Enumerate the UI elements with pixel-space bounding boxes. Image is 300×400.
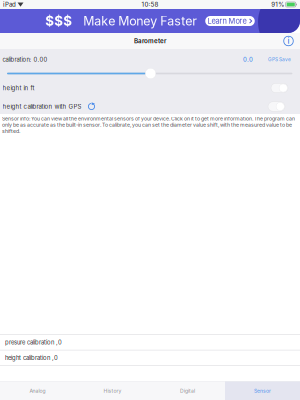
button[interactable]: History: [75, 382, 150, 400]
button[interactable]: Sensor: [225, 382, 300, 400]
button[interactable]: presure calibration ,0: [0, 335, 300, 350]
staticText: Analog: [29, 388, 45, 394]
staticText: Barometer: [134, 37, 166, 45]
button[interactable]: Info: [283, 35, 294, 46]
staticText: $$$: [45, 13, 72, 29]
button[interactable]: Analog: [0, 382, 75, 400]
staticText: Learn More: [208, 16, 247, 25]
staticText: Make Money Faster: [83, 13, 197, 28]
staticText: Digital: [180, 388, 195, 394]
button[interactable]: $$$: [0, 9, 300, 33]
staticText: calibration: 0.00: [2, 56, 47, 63]
button[interactable]: height calibration ,0: [0, 350, 300, 365]
staticText: 10:58: [141, 1, 158, 8]
button[interactable]: Digital: [150, 382, 225, 400]
staticText: height calibration ,0: [5, 354, 58, 361]
button[interactable]: height calibration with GPS: [0, 99, 300, 114]
staticText: height calibration with GPS: [2, 103, 81, 110]
staticText: 91%: [271, 1, 284, 8]
staticText: presure calibration ,0: [5, 339, 62, 346]
staticText: History: [103, 388, 121, 394]
staticText: Sensor: [254, 388, 271, 394]
button[interactable]: height in ft: [0, 77, 300, 99]
staticText: 0.0: [243, 56, 253, 63]
staticText: i: [287, 36, 289, 46]
staticText: iPad: [3, 1, 16, 8]
staticText: Sensor info: You can view all the enviro…: [2, 115, 295, 134]
staticText: height in ft: [2, 84, 34, 92]
staticText: GPS Save: [268, 57, 291, 62]
button[interactable]: GPS Save: [253, 54, 300, 65]
